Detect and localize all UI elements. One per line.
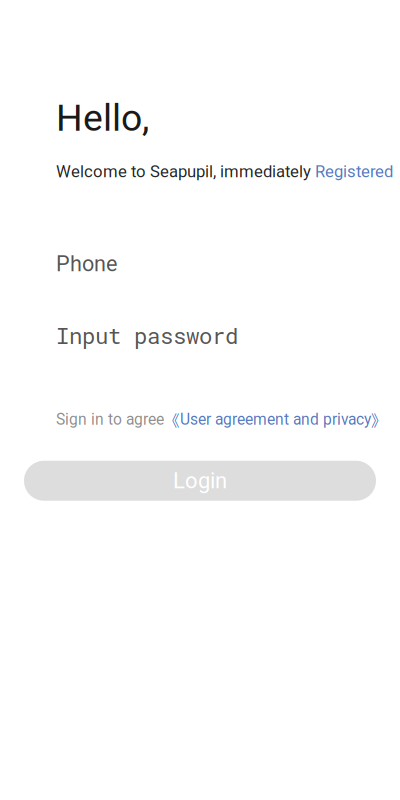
staticText: Hello,: [56, 96, 149, 140]
staticText: Welcome to Seapupil, immediately: [56, 162, 315, 181]
button[interactable]: Input password: [56, 321, 400, 350]
staticText: Input password: [56, 321, 238, 350]
staticText: Registered: [315, 162, 393, 181]
staticText: User agreement and privacy: [180, 410, 371, 429]
staticText: Login: [173, 468, 227, 494]
button[interactable]: Login: [24, 461, 376, 501]
staticText: 》: [371, 408, 387, 431]
staticText: Sign in to agree: [56, 410, 164, 429]
button[interactable]: 《: [164, 408, 387, 431]
staticText: 《: [164, 408, 180, 431]
button[interactable]: Phone: [56, 251, 400, 277]
staticText: Phone: [56, 251, 117, 277]
button[interactable]: Registered: [315, 162, 393, 181]
